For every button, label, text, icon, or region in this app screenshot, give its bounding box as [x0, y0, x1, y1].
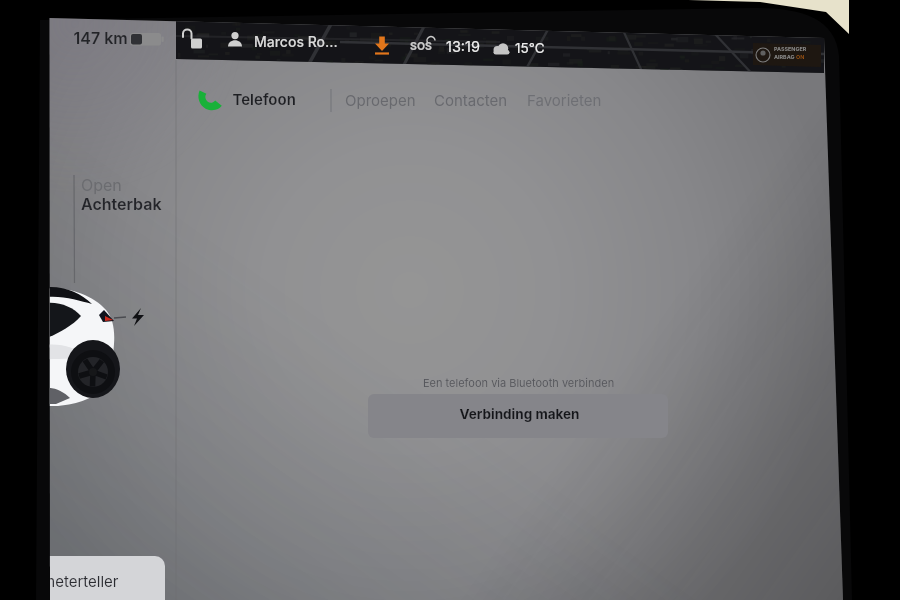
button[interactable]	[34, 556, 165, 600]
button[interactable]	[74, 168, 169, 222]
button[interactable]	[340, 86, 422, 114]
button[interactable]	[522, 86, 602, 114]
button[interactable]	[429, 86, 513, 114]
button[interactable]	[200, 86, 310, 114]
button[interactable]: Passenger airbag status	[744, 40, 830, 70]
button[interactable]: Unlock	[178, 24, 298, 60]
button[interactable]	[368, 394, 668, 438]
